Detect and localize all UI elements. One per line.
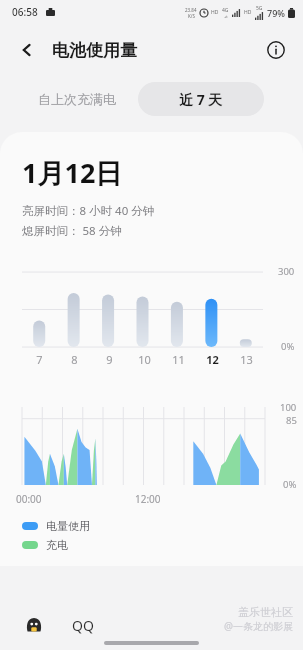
staticText: 电量使用 bbox=[46, 519, 90, 533]
staticText: 自上次充满电 bbox=[38, 91, 116, 107]
staticText: 00:00 bbox=[16, 492, 42, 506]
button[interactable]: 近 7 天 bbox=[138, 82, 264, 116]
staticText: 4G bbox=[222, 7, 229, 14]
staticText: 12 bbox=[206, 352, 219, 367]
staticText: HD bbox=[244, 9, 252, 16]
staticText: 23.84 bbox=[185, 7, 197, 13]
staticText: 9 bbox=[106, 352, 113, 367]
staticText: @一条龙的影展 bbox=[224, 619, 293, 633]
staticText: 100 bbox=[280, 401, 297, 414]
staticText: 盖乐世社区 bbox=[238, 605, 293, 619]
staticText: HD bbox=[211, 9, 219, 16]
staticText: 7 bbox=[36, 352, 43, 367]
button[interactable]: 返回 bbox=[10, 33, 44, 67]
staticText: 11 bbox=[172, 352, 185, 367]
button[interactable]: 信息 bbox=[259, 33, 293, 67]
staticText: 0% bbox=[283, 478, 297, 491]
staticText: K/S bbox=[188, 13, 195, 19]
staticText: 1月12日 bbox=[22, 154, 123, 191]
staticText: 亮屏时间：8 小时 40 分钟 bbox=[22, 203, 155, 219]
staticText: 电池使用量 bbox=[52, 40, 137, 61]
button[interactable]: 自上次充满电 bbox=[26, 84, 128, 114]
staticText: +t bbox=[224, 14, 228, 19]
staticText: 13 bbox=[240, 352, 253, 367]
staticText: 79% bbox=[267, 7, 285, 19]
staticText: 12:00 bbox=[135, 492, 161, 506]
staticText: 300 bbox=[278, 265, 295, 278]
staticText: 10 bbox=[138, 352, 151, 367]
staticText: 近 7 天 bbox=[179, 90, 223, 109]
staticText: 06:58 bbox=[12, 5, 38, 19]
staticText: 85 bbox=[286, 414, 297, 427]
staticText: 充电 bbox=[46, 538, 68, 552]
staticText: 8 bbox=[71, 352, 78, 367]
staticText: 熄屏时间： 58 分钟 bbox=[22, 223, 122, 239]
staticText: QQ bbox=[72, 616, 94, 635]
staticText: 0% bbox=[281, 340, 295, 353]
staticText: 5G bbox=[256, 5, 263, 12]
